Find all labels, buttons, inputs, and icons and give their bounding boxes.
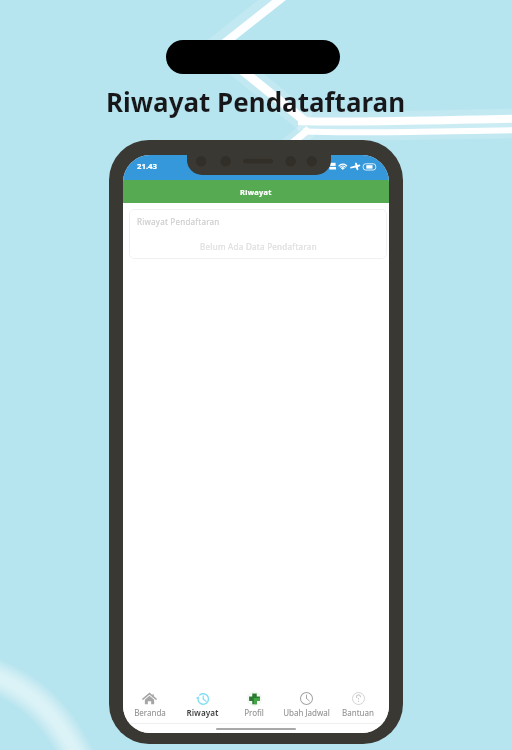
staticText: Riwayat Pendataftaran xyxy=(106,84,406,119)
button[interactable]: Bantuan xyxy=(332,689,384,723)
staticText: Beranda xyxy=(134,707,166,718)
staticText: Riwayat Pendaftaran xyxy=(137,216,220,227)
staticText: Riwayat xyxy=(240,187,272,197)
button[interactable]: Ubah Jadwal xyxy=(280,689,332,723)
button[interactable]: Beranda xyxy=(123,689,176,723)
button[interactable]: Profil xyxy=(228,689,280,723)
staticText: Profil xyxy=(244,707,264,718)
staticText: Belum Ada Data Pendaftaran xyxy=(200,241,317,252)
staticText: Bantuan xyxy=(342,707,374,718)
button[interactable]: Riwayat xyxy=(176,689,228,723)
staticText: Riwayat xyxy=(186,707,219,718)
staticText: 21.43 xyxy=(137,161,158,172)
staticText: Ubah Jadwal xyxy=(283,707,330,718)
